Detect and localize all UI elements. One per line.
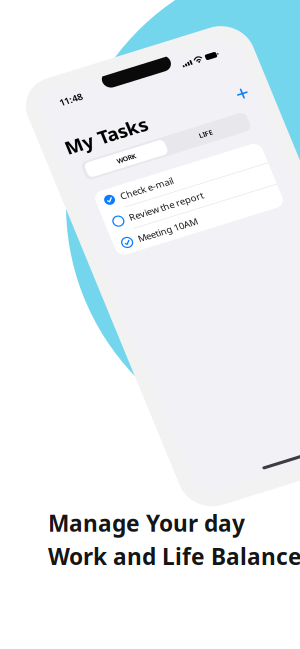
staticText: My Tasks	[22, 62, 106, 87]
staticText: Review the report	[54, 156, 130, 168]
staticText: Work and Life Balance	[48, 541, 300, 571]
staticText: Check e-mail	[54, 132, 108, 144]
button[interactable]: WORK	[33, 95, 115, 111]
staticText: Manage Your day	[48, 508, 245, 538]
staticText: Meeting 10AM	[54, 179, 115, 192]
button[interactable]: Meeting 10AM	[30, 174, 202, 197]
staticText: WORK	[64, 98, 83, 107]
button[interactable]: Check e-mail	[30, 127, 202, 150]
button[interactable]: Review the report	[30, 150, 202, 173]
